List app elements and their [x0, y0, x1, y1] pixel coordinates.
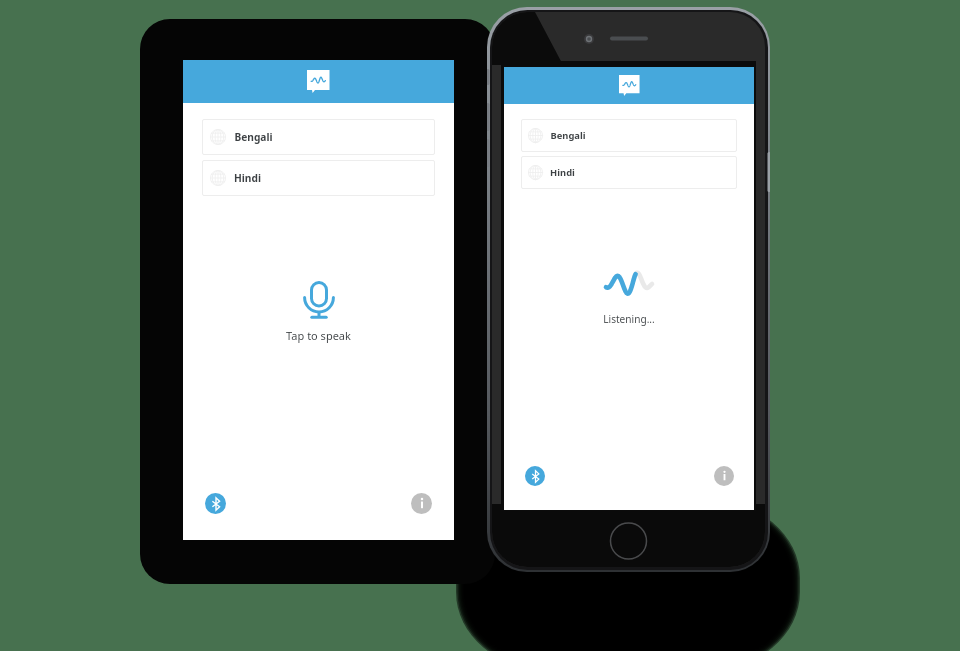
button[interactable]: App logo [307, 70, 330, 94]
button[interactable]: Info [411, 493, 432, 514]
button[interactable]: App logo [619, 75, 640, 97]
staticText: Hindi [234, 171, 261, 185]
button[interactable]: Bluetooth [525, 466, 545, 486]
button[interactable]: Hindi [202, 160, 435, 196]
button[interactable]: Info [714, 466, 734, 486]
staticText: Bengali [550, 129, 586, 142]
staticText: Hindi [550, 166, 575, 179]
button[interactable]: Bengali [521, 119, 737, 152]
button[interactable]: Bengali [202, 119, 435, 155]
staticText: Bengali [234, 130, 273, 144]
button[interactable]: Bluetooth [205, 493, 226, 514]
button[interactable]: Tap to speak [303, 281, 335, 319]
button[interactable]: Hindi [521, 156, 737, 189]
staticText: Listening... [603, 312, 655, 326]
staticText: Tap to speak [286, 328, 351, 343]
